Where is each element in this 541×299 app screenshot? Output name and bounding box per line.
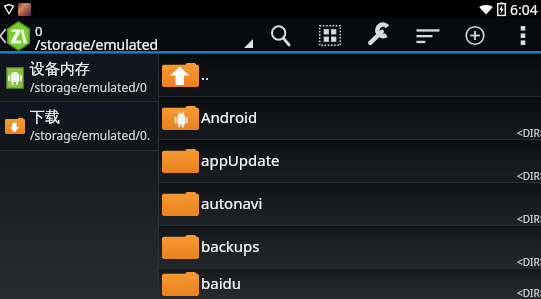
staticText: 下载 <box>30 108 60 127</box>
staticText: 0 <box>35 22 43 40</box>
staticText: <DIR> <box>517 212 541 226</box>
button[interactable]: More options <box>512 18 534 53</box>
button[interactable]: Android <box>159 97 541 139</box>
staticText: <DIR> <box>517 286 541 299</box>
staticText: backups <box>201 236 260 256</box>
button[interactable]: Tools <box>359 17 398 53</box>
staticText: <DIR> <box>517 169 541 183</box>
button[interactable]: autonavi <box>159 183 541 225</box>
button[interactable]: 下载 <box>0 102 158 150</box>
button[interactable]: 设备内存 <box>0 54 158 101</box>
staticText: Android <box>201 107 258 127</box>
button[interactable]: Expand path <box>238 18 258 54</box>
staticText: /storage/emulated <box>35 35 159 54</box>
button[interactable]: appUpdate <box>159 140 541 182</box>
button[interactable]: Add <box>457 18 493 53</box>
staticText: 6:04 <box>510 0 538 18</box>
staticText: autonavi <box>201 193 263 213</box>
button[interactable]: Sort <box>407 18 447 53</box>
staticText: /storage/emulated/0. <box>30 127 151 143</box>
staticText: /storage/emulated/0 <box>30 79 147 95</box>
staticText: .. <box>201 64 210 84</box>
staticText: 设备内存 <box>30 60 90 79</box>
button[interactable]: backups <box>159 226 541 268</box>
button[interactable]: baidu <box>159 269 541 299</box>
staticText: appUpdate <box>201 150 280 170</box>
button[interactable]: Search <box>264 18 298 54</box>
staticText: <DIR> <box>517 255 541 269</box>
staticText: baidu <box>201 273 242 293</box>
button[interactable]: .. <box>159 54 541 96</box>
button[interactable]: Back <box>0 18 10 54</box>
button[interactable]: Select items <box>311 17 349 53</box>
staticText: <DIR> <box>517 126 541 140</box>
